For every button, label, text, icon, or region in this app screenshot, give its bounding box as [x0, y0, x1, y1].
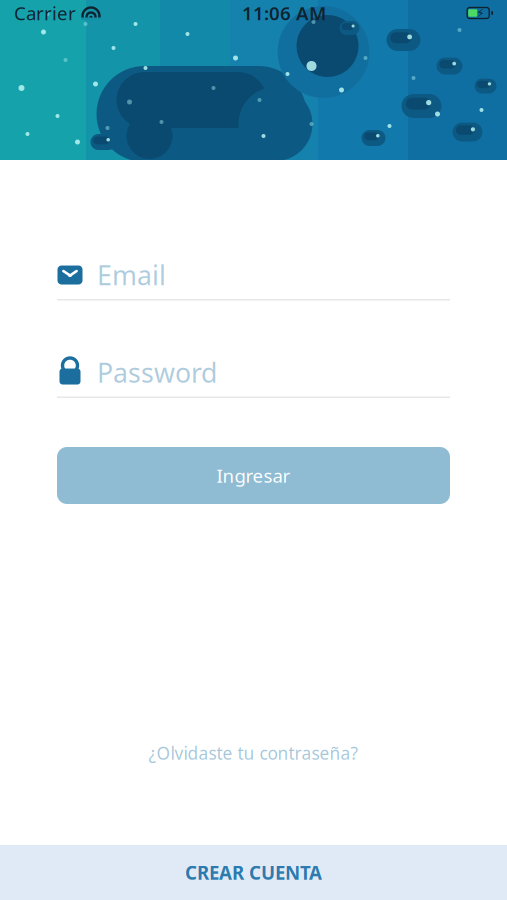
- staticText: Carrier: [14, 1, 76, 25]
- staticText: ⚡︎: [476, 6, 484, 20]
- staticText: Email: [97, 257, 166, 293]
- staticText: CREAR CUENTA: [185, 860, 322, 885]
- staticText: Ingresar: [216, 463, 290, 488]
- staticText: ¿Olvidaste tu contraseña?: [148, 741, 358, 764]
- button[interactable]: Ingresar: [57, 447, 450, 504]
- button[interactable]: ¿Olvidaste tu contraseña?: [57, 738, 450, 768]
- staticText: 11:06 AM: [242, 1, 326, 25]
- staticText: Password: [97, 355, 217, 390]
- button[interactable]: CREAR CUENTA: [0, 845, 507, 900]
